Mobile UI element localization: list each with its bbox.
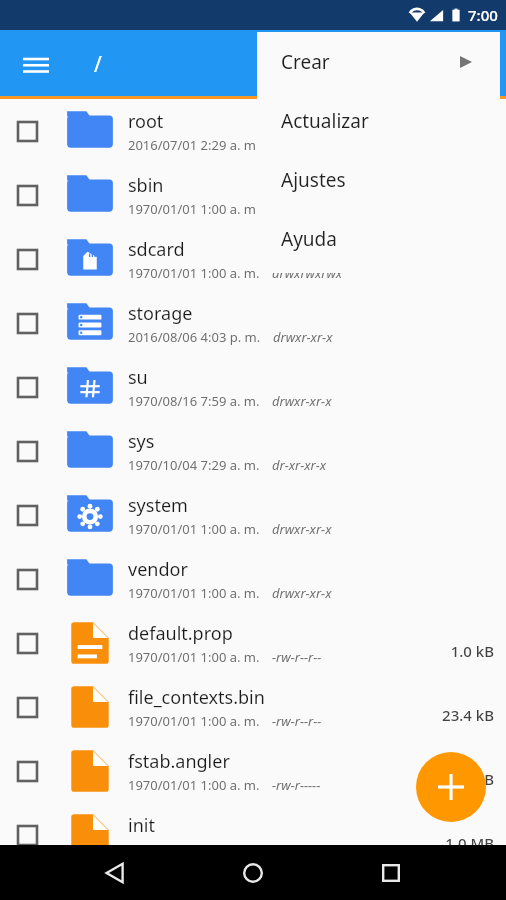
staticText: 1970/01/01 1:00 a. m. [128, 584, 260, 602]
staticText: fstab.angler [128, 749, 230, 774]
button[interactable]: Select storage [0, 291, 506, 355]
button[interactable]: Select sys [0, 419, 506, 483]
staticText: 1.0 MB [445, 833, 494, 853]
button[interactable]: Select vendor [0, 547, 506, 611]
staticText: Crear [281, 49, 330, 75]
staticText: 1970/01/01 1:00 a. m. [128, 776, 260, 794]
button[interactable]: Select fstab.angler [0, 739, 506, 803]
button[interactable]: Ayuda [257, 209, 500, 268]
button[interactable]: Select file_contexts.bin [0, 675, 506, 739]
button[interactable]: Select su [17, 377, 38, 398]
staticText: -rwxr-x--- [272, 840, 325, 858]
button[interactable]: Select default.prop [0, 611, 506, 675]
button[interactable]: Select file_contexts.bin [17, 697, 38, 718]
staticText: 1970/01/01 1:00 a. m. [128, 264, 260, 282]
staticText: system [128, 493, 188, 518]
staticText: dr-xr-xr-x [272, 456, 327, 474]
staticText: drwxr-xr-x [273, 328, 333, 346]
staticText: 7:00 [468, 5, 498, 25]
staticText: / [94, 50, 102, 79]
button[interactable]: Select sbin [17, 185, 38, 206]
staticText: default.prop [128, 621, 233, 646]
button[interactable]: Select system [0, 483, 506, 547]
staticText: 2016/08/06 4:03 p. m. [128, 328, 261, 346]
button[interactable]: Open navigation drawer [14, 43, 58, 87]
staticText: 1970/01/01 1:00 a. m. [128, 840, 260, 858]
staticText: Ayuda [281, 226, 337, 252]
button[interactable]: Select sdcard [0, 227, 506, 291]
button[interactable]: Select default.prop [17, 633, 38, 654]
staticText: drwxr-xr-x [272, 584, 332, 602]
button[interactable]: Crear [257, 32, 500, 91]
button[interactable]: Select root [0, 99, 506, 163]
staticText: init [128, 813, 155, 838]
button[interactable]: Recent apps [362, 845, 420, 900]
staticText: drwxr-xr-x [272, 520, 332, 538]
button[interactable]: Select init [0, 803, 506, 867]
staticText: 2.9 kB [450, 769, 494, 789]
button[interactable]: Select storage [17, 313, 38, 334]
staticText: 1970/01/01 1:00 a. m. [128, 712, 260, 730]
staticText: sdcard [128, 237, 185, 262]
button[interactable]: Ajustes [257, 150, 500, 209]
staticText: -rw-r--r-- [272, 648, 322, 666]
staticText: Actualizar [281, 108, 369, 134]
button[interactable]: Select system [17, 505, 38, 526]
staticText: 1970/10/04 7:29 a. m. [128, 456, 260, 474]
button[interactable]: Back [86, 845, 144, 900]
staticText: 2016/07/01 2:29 a. m. [128, 136, 260, 154]
button[interactable]: Select sdcard [17, 249, 38, 270]
staticText: 1970/01/01 1:00 a. m. [128, 648, 260, 666]
button[interactable]: Select root [17, 121, 38, 142]
staticText: drwxr-xr-x [272, 392, 332, 410]
button[interactable]: Select init [17, 825, 38, 846]
staticText: sbin [128, 173, 164, 198]
staticText: root [128, 109, 164, 134]
button[interactable]: Home [224, 845, 282, 900]
staticText: Ajustes [281, 167, 346, 193]
button[interactable]: Select sbin [0, 163, 506, 227]
button[interactable]: Select vendor [17, 569, 38, 590]
staticText: 1970/01/01 1:00 a. m. [128, 520, 260, 538]
staticText: 1970/08/16 7:59 a. m. [128, 392, 260, 410]
staticText: vendor [128, 557, 188, 582]
button[interactable]: Select fstab.angler [17, 761, 38, 782]
staticText: -rw-r--r-- [272, 712, 322, 730]
staticText: drwxrwxrwx [272, 264, 343, 282]
staticText: file_contexts.bin [128, 685, 265, 710]
staticText: 1970/01/01 1:00 a. m. [128, 200, 260, 218]
staticText: 1.0 kB [450, 641, 494, 661]
button[interactable]: Actualizar [257, 91, 500, 150]
button[interactable]: Add [416, 752, 486, 822]
staticText: su [128, 365, 148, 390]
staticText: storage [128, 301, 193, 326]
button[interactable]: Select su [0, 355, 506, 419]
button[interactable]: Select sys [17, 441, 38, 462]
staticText: -rw-r----- [272, 776, 321, 794]
staticText: 23.4 kB [442, 705, 494, 725]
staticText: sys [128, 429, 155, 454]
